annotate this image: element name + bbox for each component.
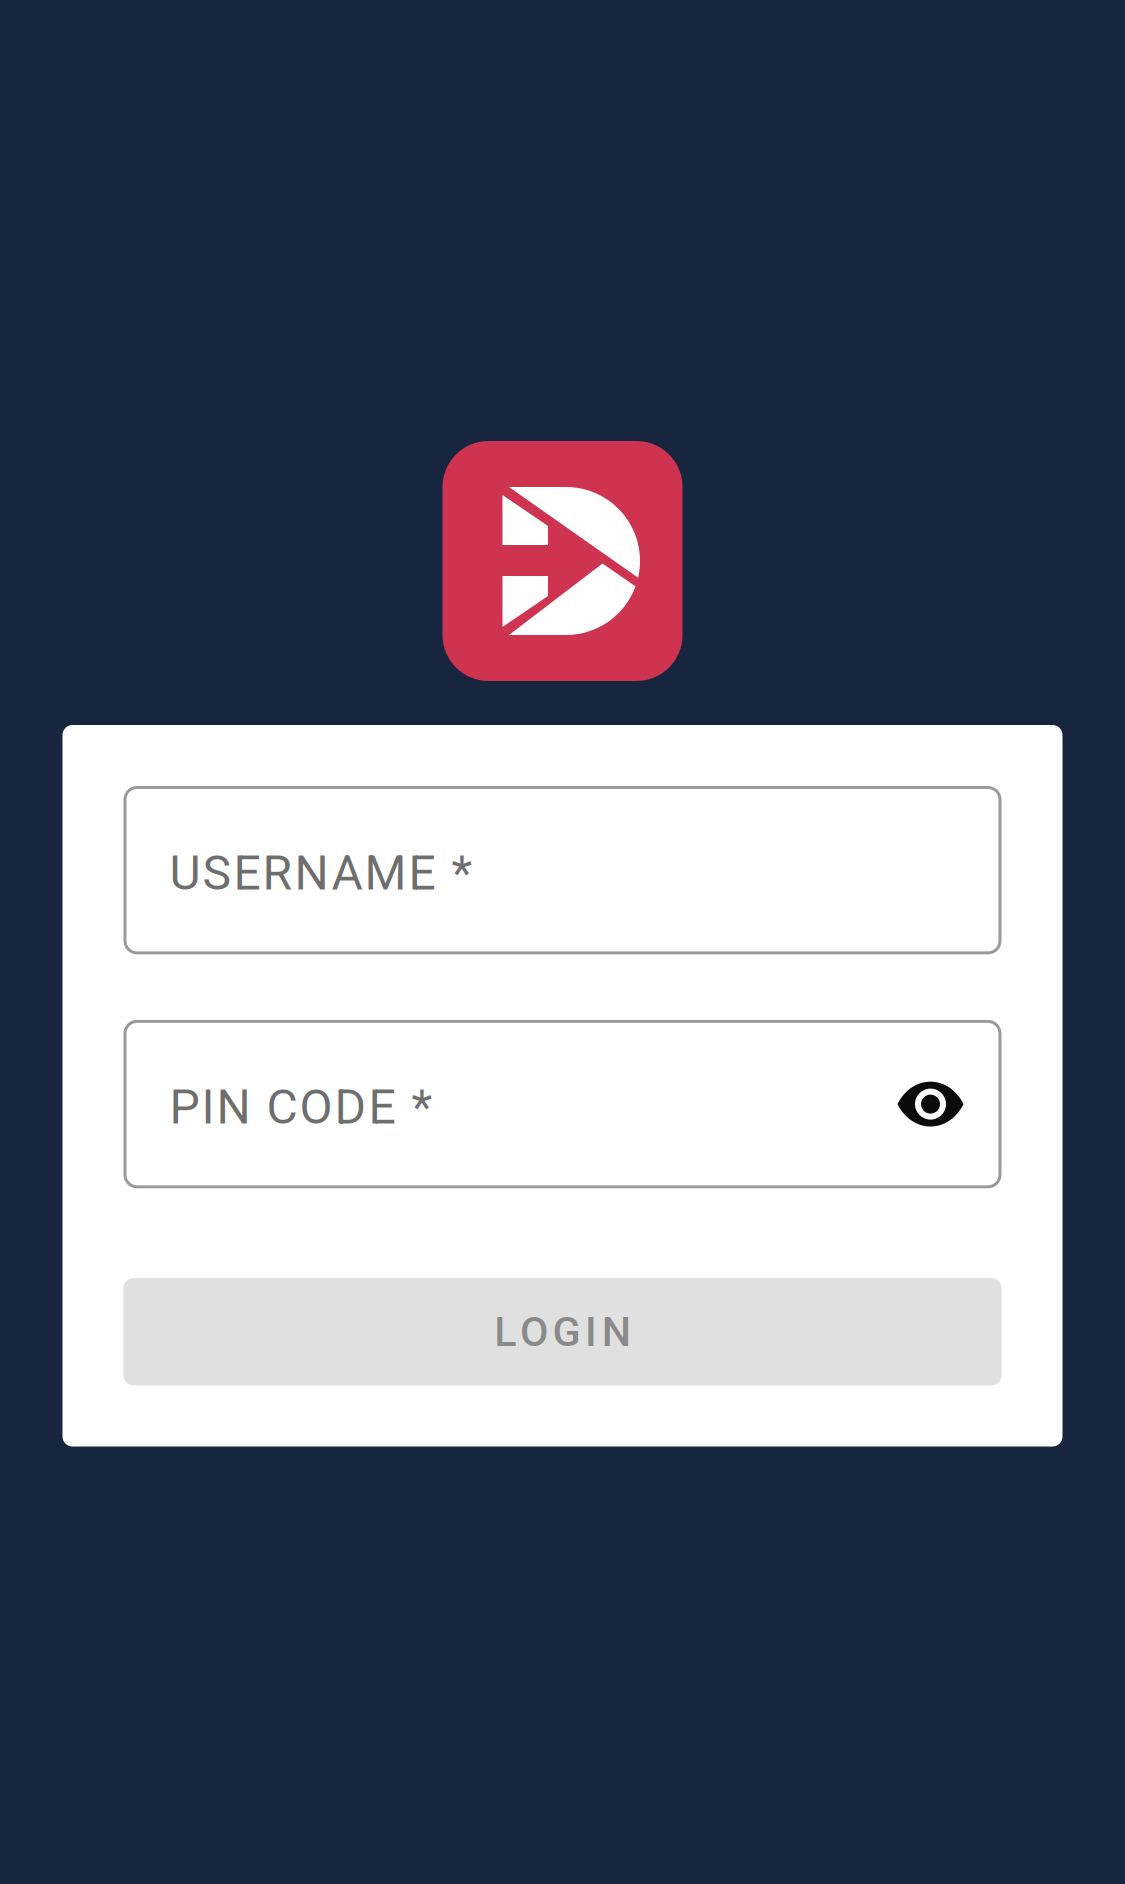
staticText: LOGIN (494, 1308, 631, 1356)
button[interactable]: Show PIN code (888, 1062, 972, 1146)
button[interactable]: PIN CODE * (123, 1020, 1001, 1188)
button[interactable]: USERNAME * (123, 786, 1001, 954)
staticText: USERNAME * (169, 845, 472, 901)
staticText: PIN CODE * (169, 1079, 432, 1135)
button[interactable]: LOGIN (123, 1278, 1001, 1385)
